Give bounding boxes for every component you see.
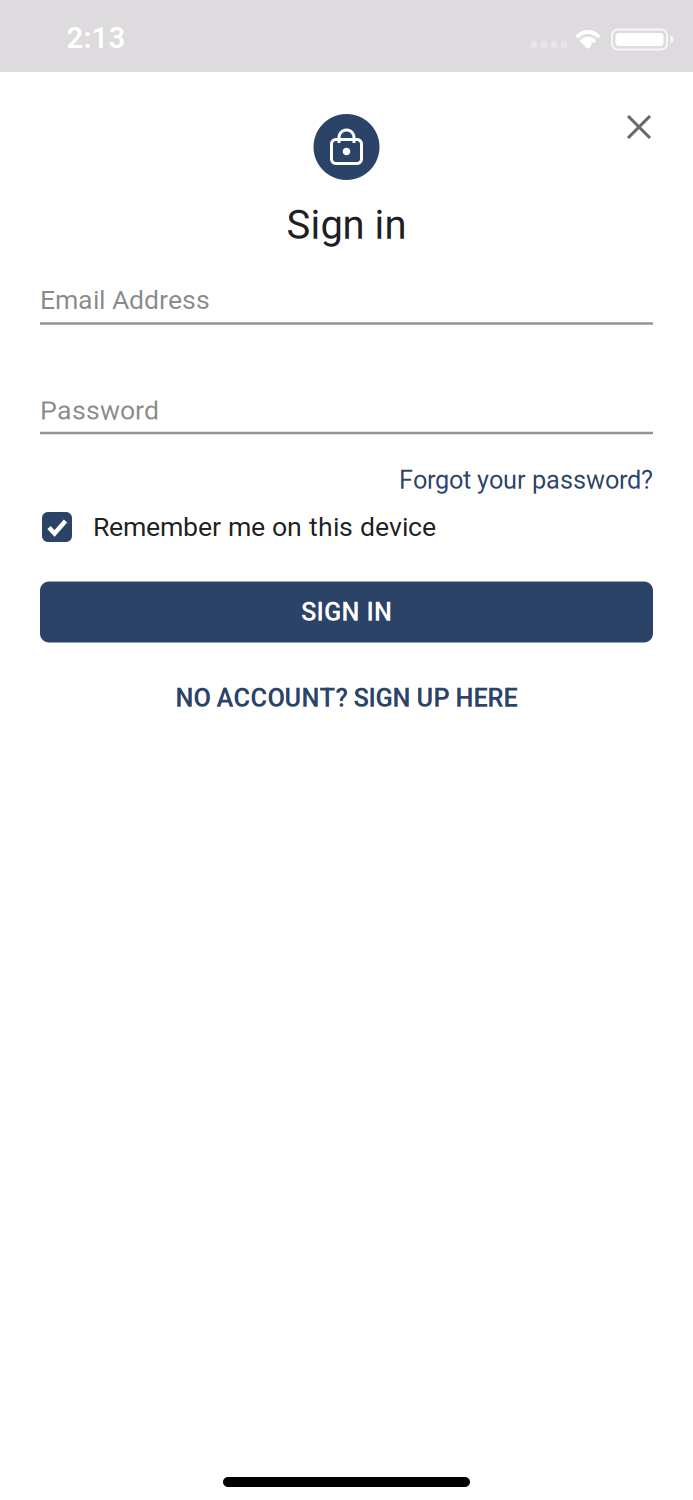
button[interactable]: NO ACCOUNT? SIGN UP HERE: [175, 683, 517, 712]
button[interactable]: Remember me on this device: [42, 505, 652, 549]
staticText: SIGN IN: [301, 597, 392, 626]
button[interactable]: Forgot your password?: [399, 465, 653, 494]
staticText: Password: [40, 395, 159, 426]
staticText: Remember me on this device: [93, 512, 436, 542]
button[interactable]: Password: [40, 388, 653, 438]
button[interactable]: SIGN IN: [40, 581, 653, 642]
button[interactable]: Email Address: [40, 279, 653, 329]
staticText: NO ACCOUNT? SIGN UP HERE: [175, 683, 517, 712]
staticText: 2:13: [66, 21, 125, 55]
staticText: Email Address: [40, 285, 210, 315]
button[interactable]: [624, 112, 654, 142]
staticText: Forgot your password?: [399, 465, 653, 494]
staticText: Sign in: [286, 202, 406, 248]
